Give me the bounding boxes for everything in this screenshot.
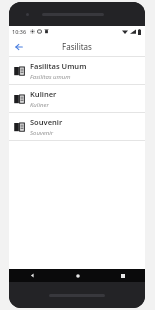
button[interactable]: Home — [55, 269, 100, 282]
staticText: Fasilitas umum — [30, 73, 71, 81]
button[interactable]: Recent apps — [100, 269, 145, 282]
staticText: Kuliner — [30, 101, 49, 109]
button[interactable]: Souvenir — [9, 113, 145, 140]
button[interactable]: Fasilitas Umum — [9, 57, 145, 84]
button[interactable]: Back — [11, 39, 27, 55]
staticText: Kuliner — [30, 89, 57, 99]
staticText: 10:36 — [12, 28, 27, 35]
button[interactable]: Kuliner — [9, 85, 145, 112]
staticText: Souvenir — [30, 129, 54, 137]
staticText: Fasilitas Umum — [30, 61, 87, 71]
button[interactable]: Back — [9, 269, 55, 282]
staticText: Souvenir — [30, 117, 63, 127]
staticText: Fasilitas — [9, 41, 145, 52]
